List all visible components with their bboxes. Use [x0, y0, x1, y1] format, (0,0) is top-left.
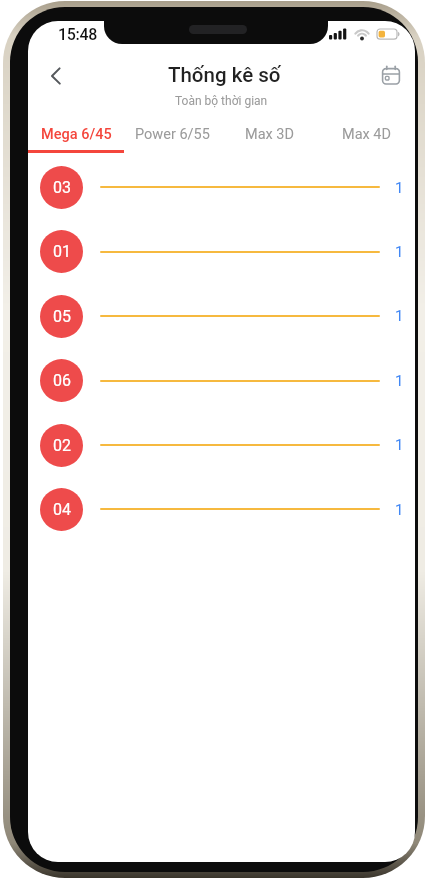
- button[interactable]: 04: [40, 488, 83, 531]
- button[interactable]: 01: [40, 230, 83, 273]
- staticText: 05: [53, 307, 71, 326]
- staticText: Max 3D: [245, 126, 295, 143]
- button[interactable]: Max 4D: [318, 122, 415, 146]
- staticText: Thống kê số: [168, 63, 281, 87]
- staticText: 06: [53, 371, 71, 390]
- staticText: Toàn bộ thời gian: [175, 94, 268, 108]
- button[interactable]: 03: [40, 166, 83, 209]
- staticText: Mega 6/45: [41, 126, 112, 143]
- staticText: 15:48: [58, 25, 98, 44]
- staticText: Max 4D: [342, 126, 392, 143]
- staticText: 01: [53, 242, 71, 261]
- button[interactable]: [374, 61, 408, 91]
- staticText: 03: [53, 178, 71, 197]
- staticText: 04: [53, 500, 71, 519]
- button[interactable]: 02: [40, 424, 83, 467]
- staticText: 1: [395, 243, 404, 261]
- staticText: 1: [395, 179, 404, 197]
- button[interactable]: 05: [40, 295, 83, 338]
- staticText: 02: [53, 436, 71, 455]
- button[interactable]: Max 3D: [221, 122, 318, 146]
- button[interactable]: Power 6/55: [124, 122, 221, 146]
- button[interactable]: Mega 6/45: [28, 122, 124, 146]
- staticText: 1: [395, 436, 404, 454]
- staticText: Power 6/55: [135, 126, 210, 143]
- button[interactable]: 06: [40, 359, 83, 402]
- button[interactable]: [38, 61, 74, 91]
- staticText: 1: [395, 372, 404, 390]
- staticText: 1: [395, 307, 404, 325]
- staticText: 1: [395, 501, 404, 519]
